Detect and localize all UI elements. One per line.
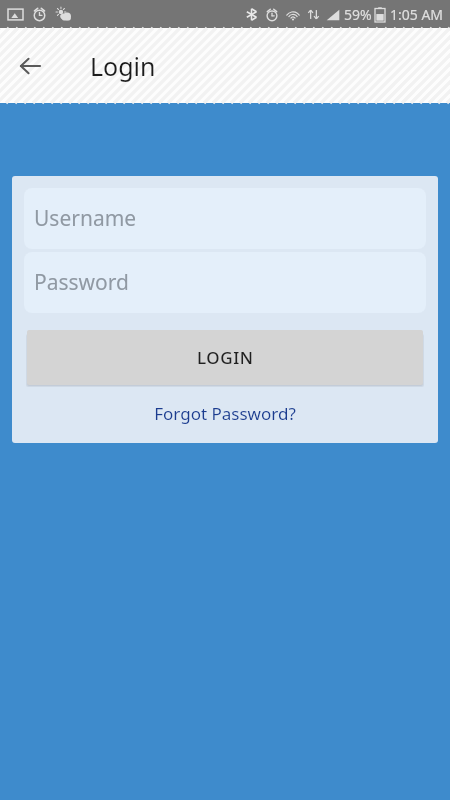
staticText: 59% (344, 5, 372, 24)
button[interactable]: Password (24, 252, 426, 313)
button[interactable]: Username (24, 188, 426, 249)
button[interactable]: Forgot Password? (24, 402, 426, 425)
button[interactable]: LOGIN (27, 330, 423, 385)
button[interactable]: Back (10, 46, 50, 86)
staticText: Username (34, 204, 137, 233)
staticText: LOGIN (197, 346, 254, 369)
staticText: Password (34, 268, 129, 297)
staticText: Forgot Password? (154, 402, 296, 425)
staticText: 1:05 AM (390, 5, 444, 24)
staticText: Login (90, 49, 156, 83)
